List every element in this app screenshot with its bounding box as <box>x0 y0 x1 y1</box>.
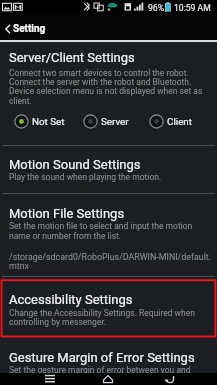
button[interactable]: Motion File Settings <box>0 194 217 276</box>
staticText: Server/Client Settings <box>9 50 135 65</box>
staticText: Set the gesture margin of error between … <box>9 365 191 375</box>
button[interactable]: Server <box>83 110 126 132</box>
other: Back <box>4 24 12 34</box>
staticText: name or number from the list. <box>9 231 122 241</box>
staticText: Device selection menu is not displayed w… <box>9 86 203 96</box>
button[interactable]: Home <box>96 373 120 385</box>
staticText: controlling by messenger. <box>9 317 106 327</box>
staticText: Gesture Margin of Error Settings <box>9 350 195 365</box>
button[interactable]: Accessibility Settings <box>0 277 217 336</box>
staticText: Connect two smart devices to control the… <box>9 68 189 78</box>
staticText: mtnx <box>9 261 29 271</box>
staticText: /storage/sdcard0/RoboPlus/DARWIN-MINI/de… <box>9 252 212 262</box>
staticText: Not Set <box>32 116 65 127</box>
staticText: Server <box>101 116 129 127</box>
staticText: Motion File Settings <box>9 206 125 221</box>
staticText: Client <box>167 116 192 127</box>
staticText: Motion Sound Settings <box>9 157 141 172</box>
staticText: client. <box>9 96 32 106</box>
button[interactable]: Motion Sound Settings <box>0 146 217 193</box>
staticText: Setting <box>13 23 46 35</box>
button[interactable]: Server/Client Settings <box>0 42 217 146</box>
staticText: Change the Accessibility Settings. Requi… <box>9 308 195 318</box>
button[interactable]: Gesture Margin of Error Settings <box>0 337 217 373</box>
button[interactable]: Client <box>149 110 189 132</box>
button[interactable]: Not Set <box>14 110 62 132</box>
staticText: Play the sound when playing the motion. <box>9 172 162 182</box>
staticText: Accessibility Settings <box>9 292 133 307</box>
button[interactable]: Back <box>0 15 51 42</box>
button[interactable]: Back <box>157 373 181 385</box>
button[interactable]: Menu <box>38 373 62 385</box>
staticText: 10:59 AM <box>174 3 211 13</box>
staticText: Set the motion file to select and input … <box>9 221 193 231</box>
staticText: 96% <box>148 3 164 13</box>
staticText: Connect the server with the robot and Bl… <box>9 77 192 87</box>
